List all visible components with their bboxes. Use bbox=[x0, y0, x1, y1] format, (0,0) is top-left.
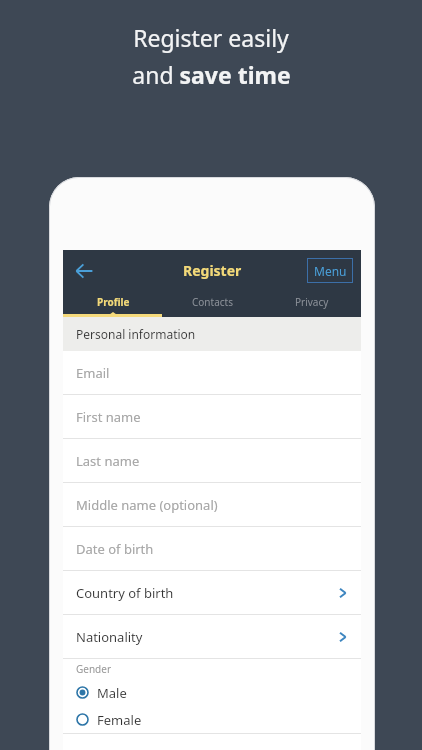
button[interactable]: Menu bbox=[307, 258, 353, 283]
button[interactable]: Contacts bbox=[163, 291, 262, 312]
staticText: Email bbox=[76, 364, 110, 382]
staticText: Last name bbox=[76, 452, 140, 470]
button[interactable]: Male bbox=[63, 679, 361, 706]
staticText: Register bbox=[183, 261, 242, 280]
button[interactable]: Middle name (optional) bbox=[63, 483, 361, 527]
staticText: Personal information bbox=[76, 326, 196, 342]
staticText: Privacy bbox=[295, 295, 329, 309]
staticText: Male bbox=[97, 684, 127, 702]
staticText: Contacts bbox=[192, 295, 233, 309]
button[interactable]: Profile bbox=[63, 291, 163, 312]
staticText: First name bbox=[76, 408, 141, 426]
staticText: and save time bbox=[132, 59, 291, 90]
button[interactable]: Last name bbox=[63, 439, 361, 483]
button[interactable]: First name bbox=[63, 395, 361, 439]
staticText: Date of birth bbox=[76, 540, 154, 558]
button[interactable]: Female bbox=[63, 706, 361, 733]
button[interactable]: Nationality bbox=[63, 615, 361, 659]
staticText: Middle name (optional) bbox=[76, 496, 218, 514]
button[interactable]: Email bbox=[63, 351, 361, 395]
button[interactable]: Date of birth bbox=[63, 527, 361, 571]
button[interactable]: Country of birth bbox=[63, 571, 361, 615]
button[interactable]: Privacy bbox=[262, 291, 361, 312]
staticText: Nationality bbox=[76, 628, 143, 646]
staticText: Menu bbox=[314, 263, 347, 279]
staticText: Country of birth bbox=[76, 584, 174, 602]
button[interactable]: Back bbox=[63, 250, 105, 291]
staticText: Profile bbox=[97, 295, 130, 309]
staticText: Female bbox=[97, 711, 142, 729]
staticText: Gender bbox=[76, 662, 112, 676]
staticText: Register easily bbox=[133, 22, 289, 53]
